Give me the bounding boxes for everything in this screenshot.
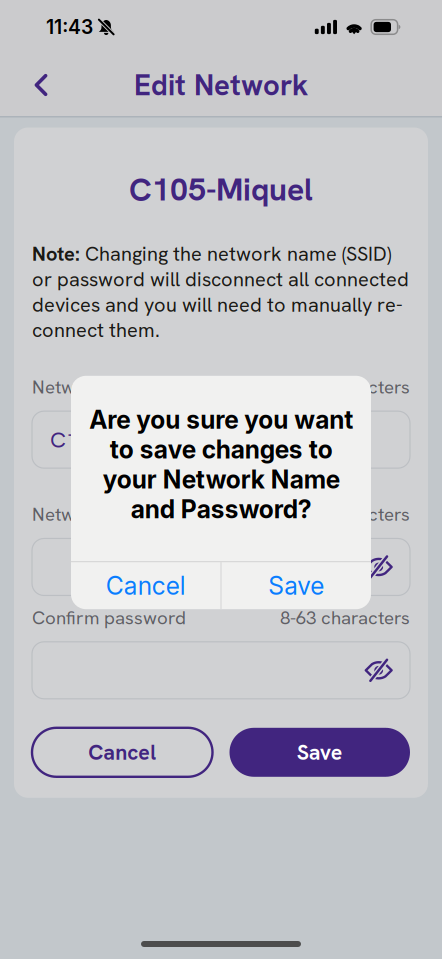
button[interactable]: Show password (364, 645, 410, 696)
staticText: Are you sure you want to save changes to… (89, 405, 353, 524)
staticText: C105-Miquel (50, 425, 179, 454)
button[interactable]: Cancel (32, 728, 212, 777)
staticText: 11:43 (46, 15, 93, 39)
staticText: 8-63 characters (280, 502, 410, 526)
button[interactable]: Cancel (71, 562, 220, 609)
staticText: Network password (32, 502, 191, 526)
staticText: Save (297, 738, 343, 766)
staticText: C105-Miquel (129, 168, 313, 210)
button[interactable]: Save (221, 562, 371, 609)
staticText: 1-32 characters (280, 375, 410, 399)
staticText: Save (268, 571, 324, 601)
button[interactable]: Back (19, 61, 63, 109)
staticText: 8-63 characters (280, 605, 410, 630)
staticText: Edit Network (134, 66, 308, 104)
button[interactable]: Show password (364, 541, 410, 592)
staticText: Note: Changing the network name (SSID) o… (32, 241, 409, 343)
staticText: Confirm password (32, 605, 186, 630)
button[interactable]: Save (229, 728, 410, 777)
staticText: Cancel (106, 571, 186, 601)
staticText: Cancel (88, 738, 156, 766)
staticText: Network Name (32, 375, 157, 399)
